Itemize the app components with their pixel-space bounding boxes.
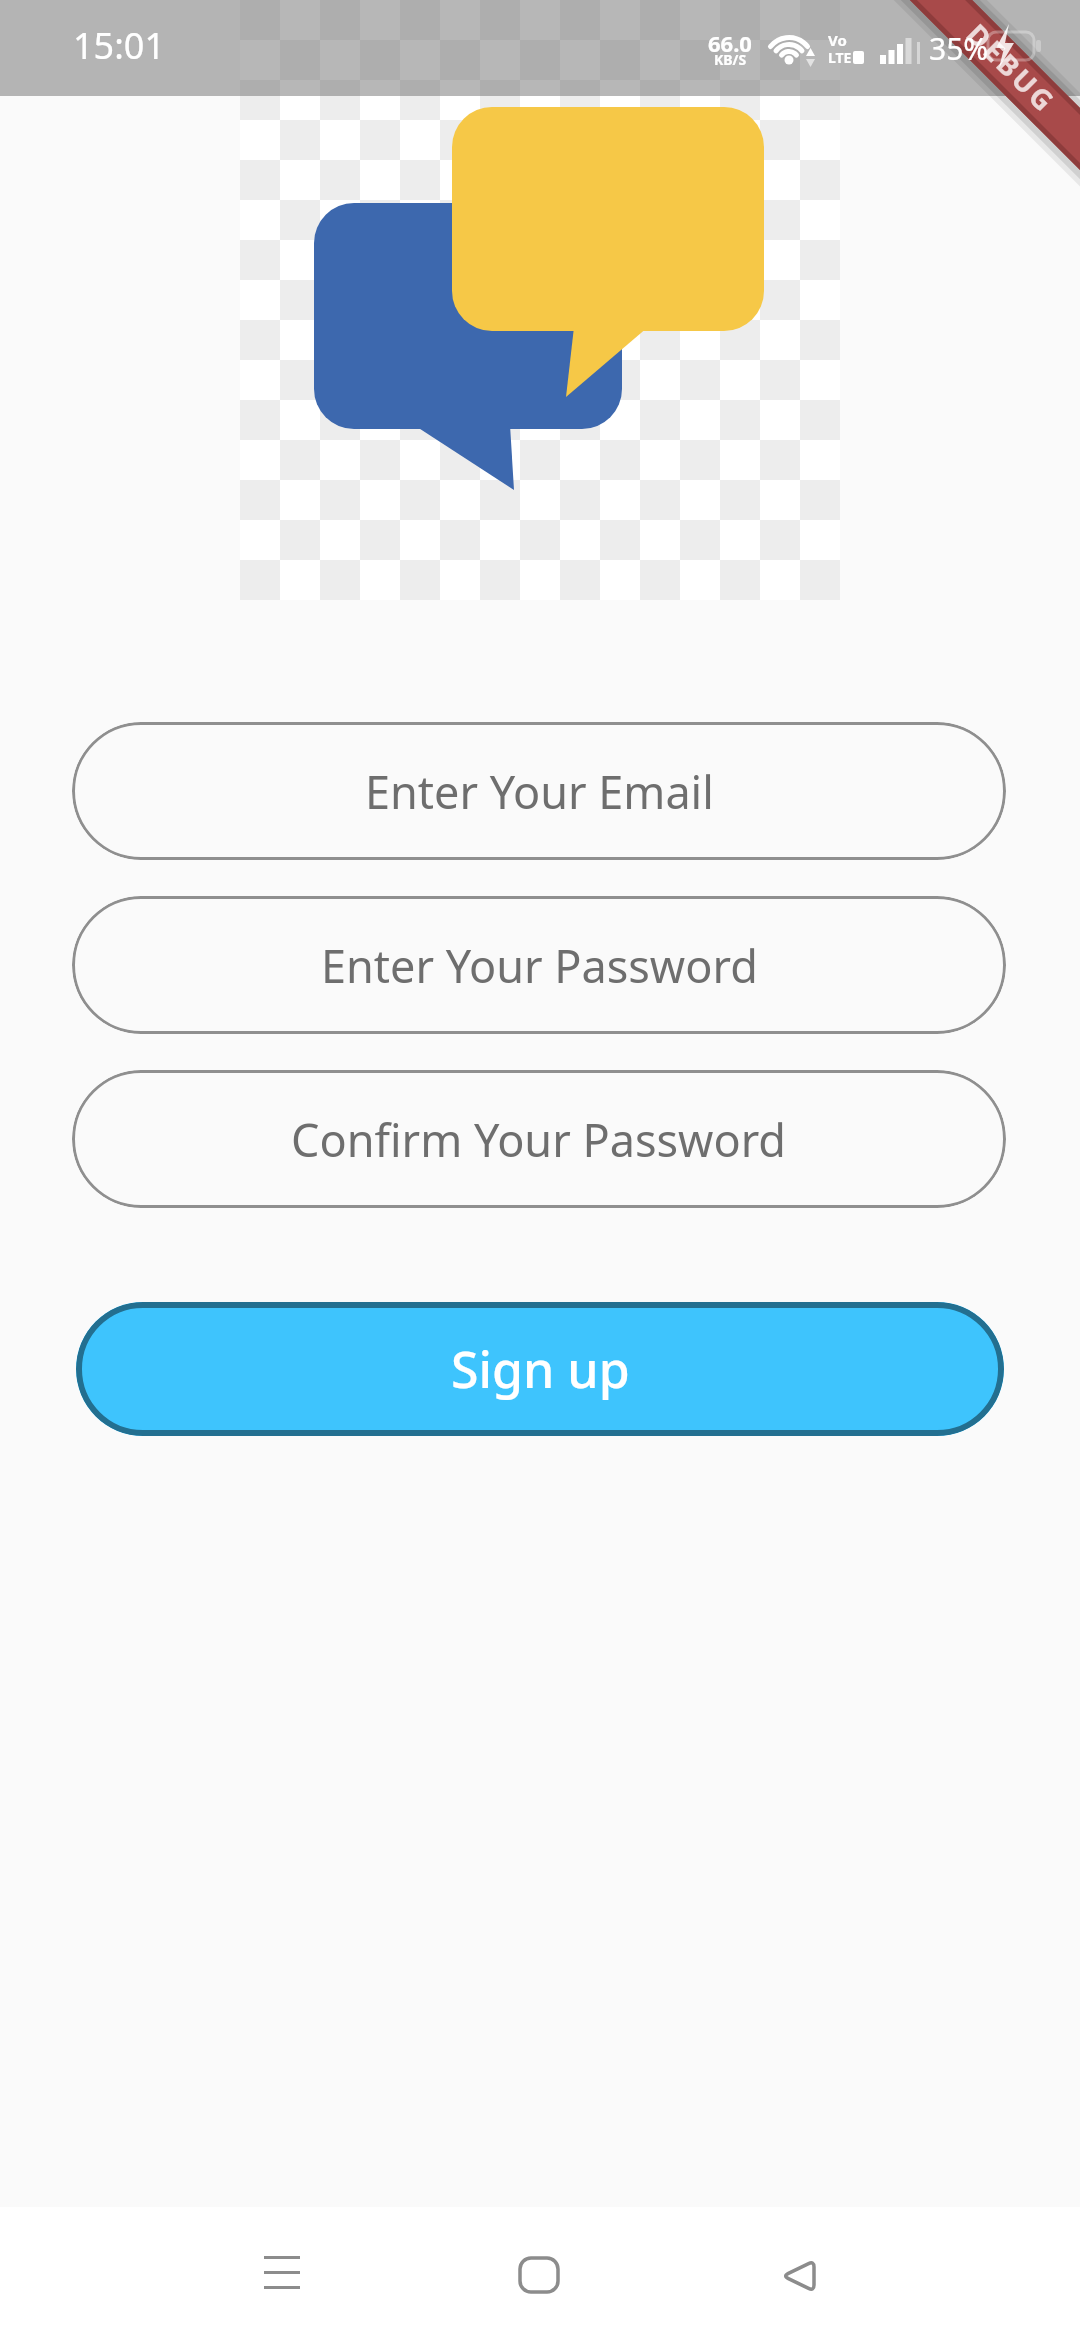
button[interactable]: Enter Your Password bbox=[72, 896, 1006, 1034]
staticText: KB/S bbox=[714, 50, 747, 66]
staticText: DEBUG bbox=[959, 15, 1065, 121]
staticText: Enter Your Email bbox=[365, 761, 714, 822]
button[interactable]: Confirm Your Password bbox=[72, 1070, 1006, 1208]
staticText: 66.0 bbox=[708, 28, 752, 54]
staticText: LTE bbox=[828, 48, 852, 64]
button[interactable] bbox=[0, 2207, 360, 2340]
staticText: Vo bbox=[828, 30, 847, 46]
staticText: Confirm Your Password bbox=[291, 1109, 787, 1170]
staticText: 15:01 bbox=[73, 21, 166, 70]
staticText: Enter Your Password bbox=[321, 935, 758, 996]
staticText: Sign up bbox=[451, 1335, 630, 1403]
button[interactable] bbox=[360, 2207, 720, 2340]
staticText: 35% bbox=[929, 28, 989, 69]
button[interactable]: Enter Your Email bbox=[72, 722, 1006, 860]
button[interactable] bbox=[720, 2207, 1080, 2340]
button[interactable]: Sign up bbox=[76, 1302, 1004, 1436]
